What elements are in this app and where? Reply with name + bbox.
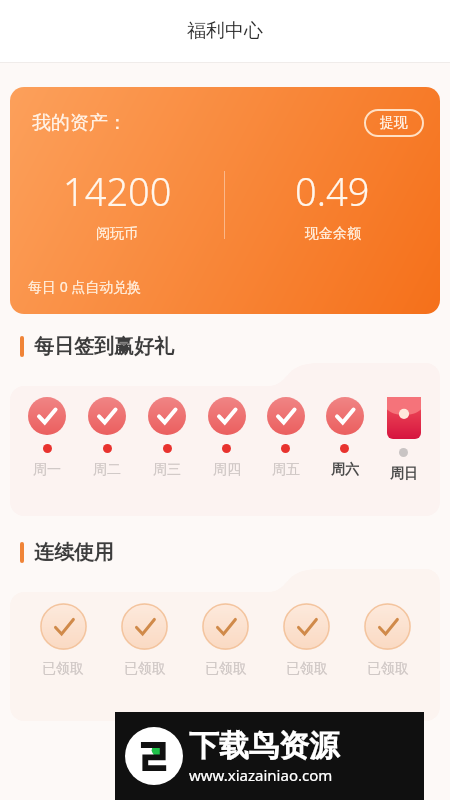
staticText: 周四 <box>213 461 241 479</box>
button[interactable]: 已领取 <box>185 603 266 678</box>
staticText: 已领取 <box>205 660 247 678</box>
button[interactable]: 周三 <box>137 397 197 479</box>
staticText: 周三 <box>153 461 181 479</box>
staticText: 提现 <box>380 114 408 132</box>
button[interactable]: 已领取 <box>22 603 104 678</box>
staticText: 0.49 <box>295 165 370 217</box>
staticText: 14200 <box>63 165 172 217</box>
staticText: 已领取 <box>42 660 84 678</box>
button[interactable]: 已领取 <box>104 603 185 678</box>
staticText: 已领取 <box>286 660 328 678</box>
button[interactable]: 已领取 <box>266 603 347 678</box>
staticText: 连续使用 <box>34 540 114 565</box>
staticText: 周六 <box>331 461 359 479</box>
staticText: 每日 0 点自动兑换 <box>28 277 142 296</box>
staticText: 现金余额 <box>305 225 361 243</box>
button[interactable]: 周五 <box>256 397 315 479</box>
button[interactable]: 周二 <box>77 397 137 479</box>
button[interactable]: 提现 <box>364 109 424 137</box>
staticText: 下载鸟资源 <box>189 727 339 765</box>
staticText: 每日签到赢好礼 <box>34 334 174 359</box>
staticText: 福利中心 <box>187 19 263 43</box>
staticText: www.xiazainiao.com <box>189 765 333 785</box>
staticText: 已领取 <box>124 660 166 678</box>
button[interactable]: 周日红包 <box>374 397 433 483</box>
button[interactable]: 周一 <box>17 397 77 479</box>
staticText: 我的资产： <box>32 111 127 135</box>
button[interactable]: 周四 <box>197 397 256 479</box>
button[interactable]: 已领取 <box>347 603 428 678</box>
staticText: 周五 <box>272 461 300 479</box>
staticText: 阅玩币 <box>96 225 138 243</box>
button[interactable]: 我的资产： <box>10 87 440 314</box>
button[interactable]: 周六 <box>315 397 374 479</box>
staticText: 周日 <box>390 465 418 483</box>
staticText: 已领取 <box>367 660 409 678</box>
staticText: 周二 <box>93 461 121 479</box>
staticText: 周一 <box>33 461 61 479</box>
